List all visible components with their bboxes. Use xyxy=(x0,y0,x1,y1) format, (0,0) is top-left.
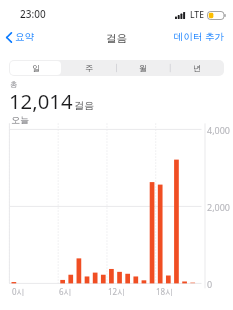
staticText: 12시 xyxy=(108,286,126,297)
staticText: 0시 xyxy=(12,286,25,297)
staticText: 데이터 추가 xyxy=(174,30,224,43)
staticText: 4,000 xyxy=(207,124,231,136)
staticText: 2,000 xyxy=(207,201,231,213)
staticText: 요약 xyxy=(15,31,34,43)
button[interactable]: 월 xyxy=(117,61,169,75)
staticText: 6시 xyxy=(59,286,72,297)
button[interactable]: 주 xyxy=(63,61,115,75)
staticText: 23:00 xyxy=(20,7,46,21)
button[interactable]: 년 xyxy=(171,61,223,75)
staticText: 18시 xyxy=(156,286,174,297)
staticText: 12,014 xyxy=(9,87,73,115)
staticText: 오늘 xyxy=(11,114,29,125)
staticText: 총 xyxy=(10,80,18,89)
staticText: 걸음 xyxy=(74,99,94,112)
staticText: LTE xyxy=(190,9,204,21)
button[interactable]: 요약 xyxy=(0,28,42,46)
staticText: 월 xyxy=(139,63,147,73)
staticText: 걸음 xyxy=(106,32,127,45)
button[interactable]: 데이터 추가 xyxy=(166,27,233,46)
staticText: 주 xyxy=(85,63,93,73)
staticText: 년 xyxy=(193,63,201,73)
staticText: 0 xyxy=(207,278,213,290)
button[interactable]: 일 xyxy=(10,61,61,75)
staticText: 일 xyxy=(32,63,40,73)
